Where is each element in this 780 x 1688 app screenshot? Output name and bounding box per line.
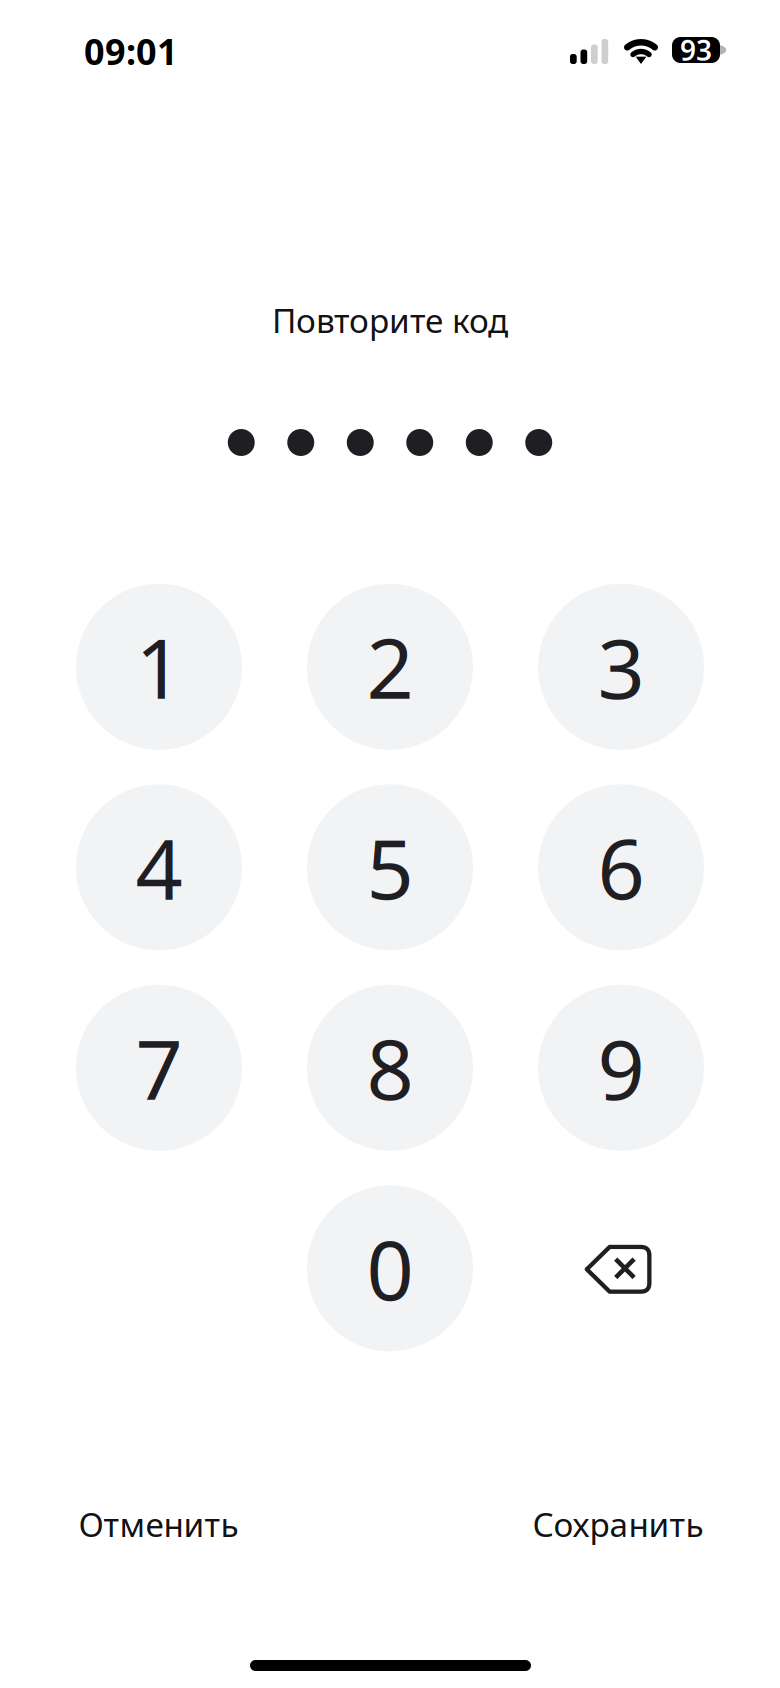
button[interactable]: Отменить [78, 1494, 278, 1554]
button[interactable]: 8 [307, 985, 473, 1151]
staticText: 1 [135, 612, 182, 722]
button[interactable]: Delete [538, 1185, 704, 1351]
staticText: 6 [597, 812, 644, 922]
button[interactable]: 1 [76, 584, 242, 750]
staticText: 09:01 [84, 27, 178, 75]
staticText: Отменить [78, 1502, 238, 1546]
button[interactable]: 7 [76, 985, 242, 1151]
staticText: 7 [135, 1013, 182, 1123]
button[interactable]: 4 [76, 784, 242, 950]
button[interactable]: Сохранить [503, 1494, 703, 1554]
button[interactable]: 9 [538, 985, 704, 1151]
staticText: 5 [366, 812, 413, 922]
staticText: 0 [366, 1213, 413, 1323]
staticText: 8 [366, 1013, 413, 1123]
staticText: 3 [597, 612, 644, 722]
staticText: 93 [680, 31, 712, 69]
button[interactable]: 3 [538, 584, 704, 750]
button[interactable]: 6 [538, 784, 704, 950]
staticText: Повторите код [272, 298, 508, 342]
staticText: 4 [135, 812, 182, 922]
staticText: 2 [366, 612, 413, 722]
button[interactable]: 5 [307, 784, 473, 950]
button[interactable]: 2 [307, 584, 473, 750]
staticText: Сохранить [532, 1502, 703, 1546]
staticText: 9 [597, 1013, 644, 1123]
button[interactable]: 0 [307, 1185, 473, 1351]
